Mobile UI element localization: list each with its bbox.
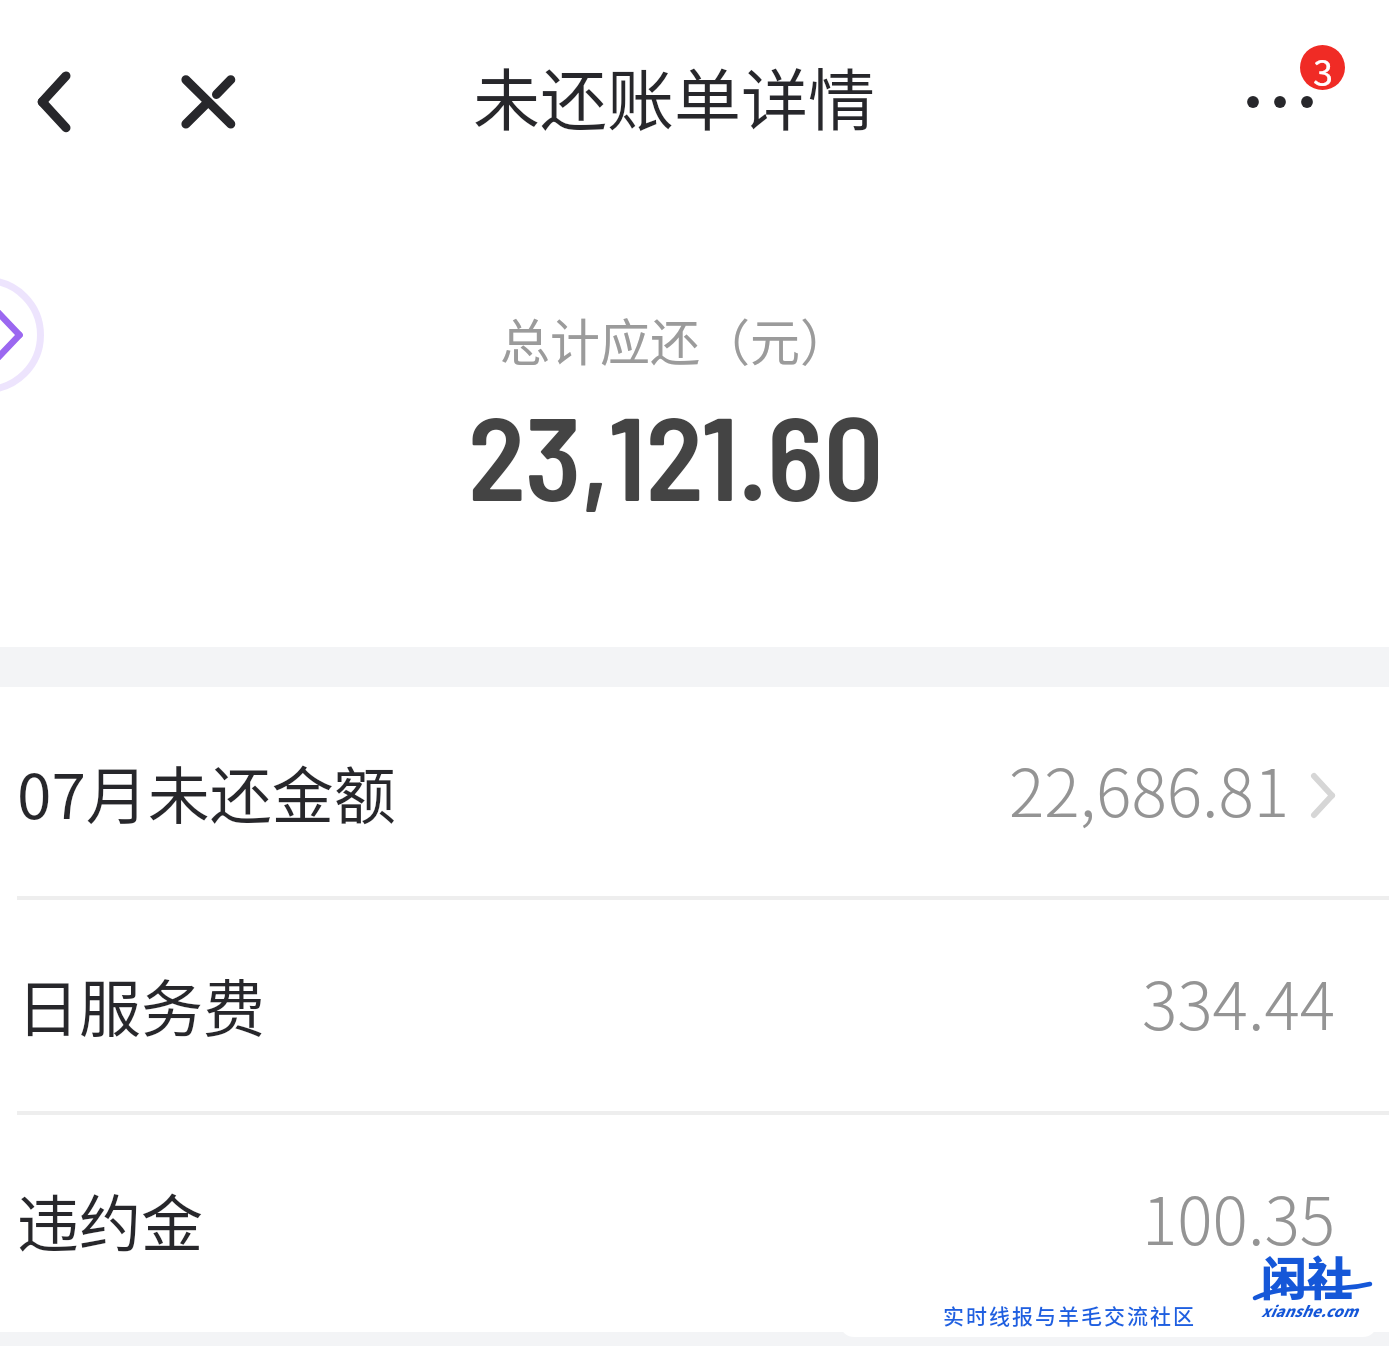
staticText: 22,686.81 xyxy=(1009,740,1290,836)
button[interactable]: 更多 xyxy=(1221,28,1355,158)
button[interactable]: 07月未还金额 xyxy=(0,687,1389,897)
button[interactable]: 违约金 xyxy=(0,1115,1389,1325)
staticText: xianshe.com xyxy=(1261,1300,1358,1322)
staticText: 100.35 xyxy=(1142,1168,1336,1264)
button[interactable]: 上一页 xyxy=(0,277,44,393)
staticText: 未还账单详情 xyxy=(473,47,875,144)
staticText: 07月未还金额 xyxy=(17,747,396,837)
staticText: 日服务费 xyxy=(17,960,266,1050)
button[interactable]: 日服务费 xyxy=(0,900,1389,1110)
staticText: 闲社 xyxy=(1261,1242,1353,1309)
button[interactable]: 关闭 xyxy=(152,47,264,159)
staticText: 总计应还（元） xyxy=(500,303,850,375)
button[interactable]: 返回 xyxy=(0,47,110,157)
staticText: 实时线报与羊毛交流社区 xyxy=(943,1300,1196,1330)
staticText: 违约金 xyxy=(17,1175,204,1265)
staticText: 3 xyxy=(1313,45,1333,89)
staticText: 334.44 xyxy=(1142,953,1336,1049)
staticText: 23,121.60 xyxy=(468,383,884,525)
